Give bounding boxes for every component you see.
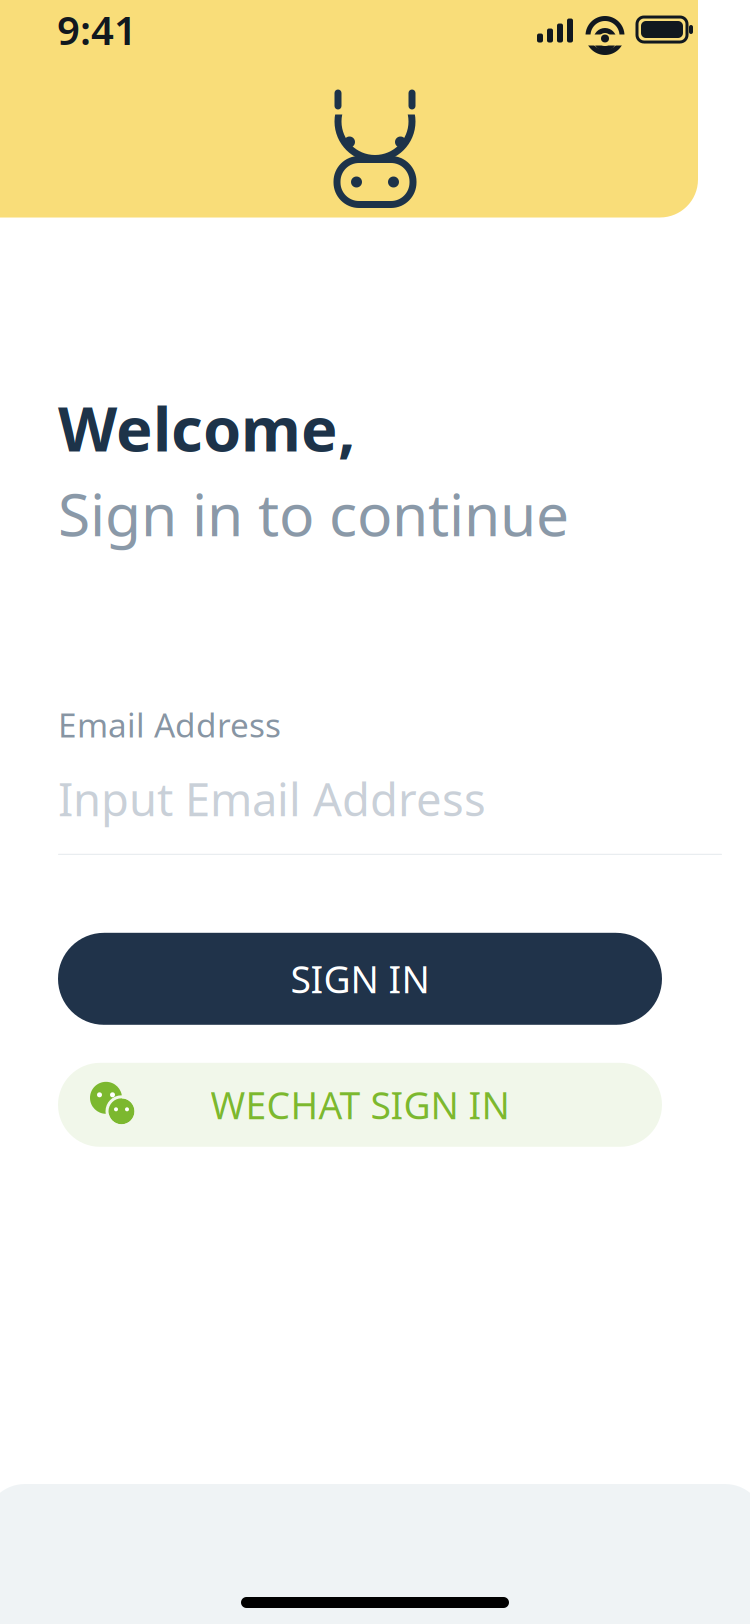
staticText: WECHAT SIGN IN xyxy=(210,1080,509,1130)
staticText: SIGN IN xyxy=(290,954,429,1004)
staticText: Email Address xyxy=(58,702,281,747)
staticText: 9:41 xyxy=(57,3,137,56)
button[interactable]: SIGN IN xyxy=(58,933,662,1025)
staticText: Sign in to continue xyxy=(58,474,569,552)
button[interactable]: WECHAT SIGN IN xyxy=(58,1063,662,1147)
staticText: Welcome, xyxy=(58,387,355,468)
staticText: Input Email Address xyxy=(58,769,486,829)
